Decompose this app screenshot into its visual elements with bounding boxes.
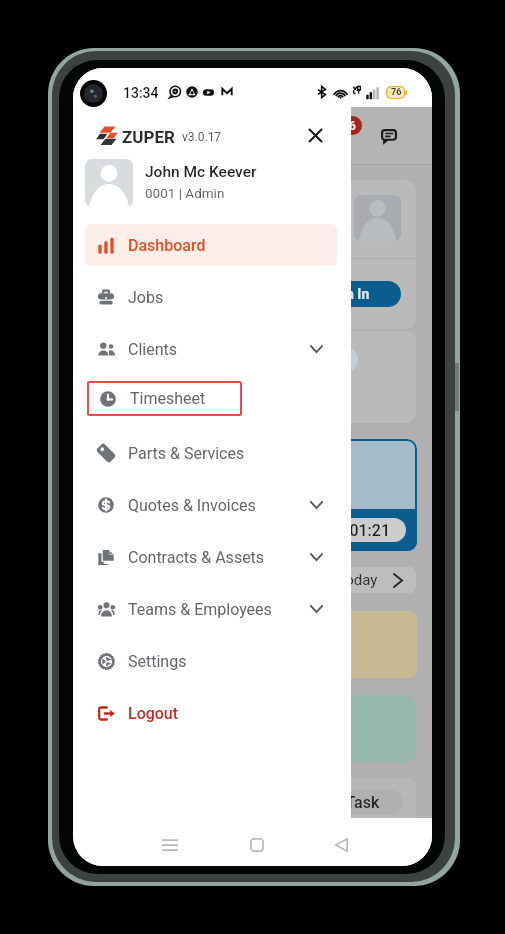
button[interactable]: Clients bbox=[85, 328, 337, 370]
staticText: Punch In bbox=[314, 286, 370, 302]
staticText: John Mc Keever bbox=[145, 163, 257, 181]
staticText: 71:01:21 bbox=[327, 521, 390, 540]
staticText: Clients bbox=[128, 340, 178, 359]
staticText: Quotes & Invoices bbox=[128, 496, 256, 515]
staticText: 76 bbox=[391, 87, 402, 98]
staticText: ZUPER bbox=[122, 127, 175, 147]
staticText: Jobs bbox=[128, 288, 164, 307]
button[interactable]: Jobs bbox=[85, 276, 337, 318]
staticText: 6 bbox=[349, 119, 356, 133]
button[interactable]: Quotes & Invoices bbox=[85, 484, 337, 526]
staticText: Settings bbox=[128, 652, 187, 671]
staticText: v3.0.17 bbox=[182, 130, 222, 144]
staticText: New Task bbox=[310, 793, 380, 812]
button[interactable]: Teams & Employees bbox=[85, 588, 337, 630]
staticText: Timesheet bbox=[130, 389, 206, 408]
button[interactable]: Recent apps bbox=[152, 827, 188, 863]
staticText: 13:34 bbox=[123, 85, 159, 101]
button[interactable]: Contracts & Assets bbox=[85, 536, 337, 578]
button[interactable]: Parts & Services bbox=[85, 432, 337, 474]
button[interactable]: Dashboard bbox=[85, 224, 337, 266]
button[interactable]: Timesheet bbox=[87, 381, 242, 416]
button[interactable]: Settings bbox=[85, 640, 337, 682]
button[interactable]: Logout bbox=[85, 692, 337, 734]
button[interactable]: Close drawer bbox=[300, 120, 330, 150]
button[interactable]: Home bbox=[239, 827, 275, 863]
button[interactable]: Back bbox=[323, 827, 359, 863]
staticText: Teams & Employees bbox=[128, 600, 272, 619]
staticText: Logout bbox=[128, 704, 179, 723]
staticText: Contracts & Assets bbox=[128, 548, 265, 567]
staticText: 0001 | Admin bbox=[145, 185, 225, 201]
staticText: View bbox=[307, 352, 338, 368]
staticText: Today bbox=[337, 571, 378, 589]
staticText: Parts & Services bbox=[128, 444, 245, 463]
staticText: Dashboard bbox=[128, 236, 206, 255]
